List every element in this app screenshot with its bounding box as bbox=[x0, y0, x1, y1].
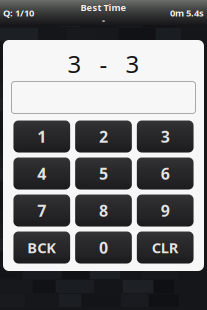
staticText: 1 bbox=[37, 126, 46, 147]
button[interactable]: 3 bbox=[137, 120, 193, 152]
button[interactable]: 7 bbox=[13, 194, 70, 226]
staticText: 4 bbox=[37, 163, 46, 184]
button[interactable]: 0 bbox=[75, 231, 132, 263]
staticText: 9 bbox=[161, 200, 170, 221]
button[interactable]: 1 bbox=[13, 120, 70, 152]
button[interactable]: 8 bbox=[75, 194, 132, 226]
button[interactable]: 6 bbox=[137, 157, 193, 189]
staticText: 0 bbox=[99, 237, 108, 258]
staticText: Q: 1/10 bbox=[3, 7, 34, 19]
staticText: 2 bbox=[99, 126, 108, 147]
staticText: CLR bbox=[152, 238, 179, 257]
staticText: 8 bbox=[99, 200, 108, 221]
button[interactable]: 5 bbox=[75, 157, 132, 189]
staticText: - bbox=[102, 14, 105, 26]
button[interactable]: 4 bbox=[13, 157, 70, 189]
staticText: 7 bbox=[37, 200, 46, 221]
button[interactable]: BCK bbox=[13, 231, 70, 263]
staticText: 0m 5.4s bbox=[170, 7, 204, 19]
staticText: 3 - 3 bbox=[67, 48, 139, 79]
staticText: 6 bbox=[161, 163, 170, 184]
button[interactable]: 9 bbox=[137, 194, 193, 226]
button[interactable]: 2 bbox=[75, 120, 132, 152]
staticText: Best Time bbox=[80, 1, 126, 13]
staticText: 5 bbox=[99, 163, 108, 184]
button[interactable]: CLR bbox=[137, 231, 193, 263]
staticText: BCK bbox=[27, 238, 56, 257]
staticText: 3 bbox=[161, 126, 170, 147]
